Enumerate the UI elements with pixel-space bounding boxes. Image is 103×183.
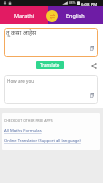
staticText: How are you — [7, 78, 35, 84]
staticText: 88% — [69, 1, 76, 5]
staticText: 6:08 PM — [81, 1, 98, 7]
staticText: Translate — [40, 62, 60, 68]
button[interactable]: Copy translation — [88, 92, 94, 98]
button[interactable]: All Maths Formulas — [4, 128, 42, 134]
button[interactable]: Swap languages — [46, 10, 58, 22]
button[interactable]: Online Translator (Support all language) — [4, 138, 81, 144]
staticText: English — [66, 12, 85, 19]
button[interactable]: Translate — [36, 61, 64, 69]
button[interactable]: How are you — [4, 75, 98, 104]
button[interactable]: Marathi — [0, 6, 48, 24]
button[interactable]: Copy source text — [88, 45, 94, 51]
button[interactable]: English — [48, 6, 103, 24]
button[interactable]: Share — [89, 61, 98, 70]
staticText: Marathi — [14, 12, 35, 19]
button[interactable]: तू कसा आहेस — [4, 28, 98, 57]
staticText: CHECKOUT OTHER FREE APPS — [4, 118, 53, 123]
staticText: तू कसा आहेस — [6, 29, 37, 37]
